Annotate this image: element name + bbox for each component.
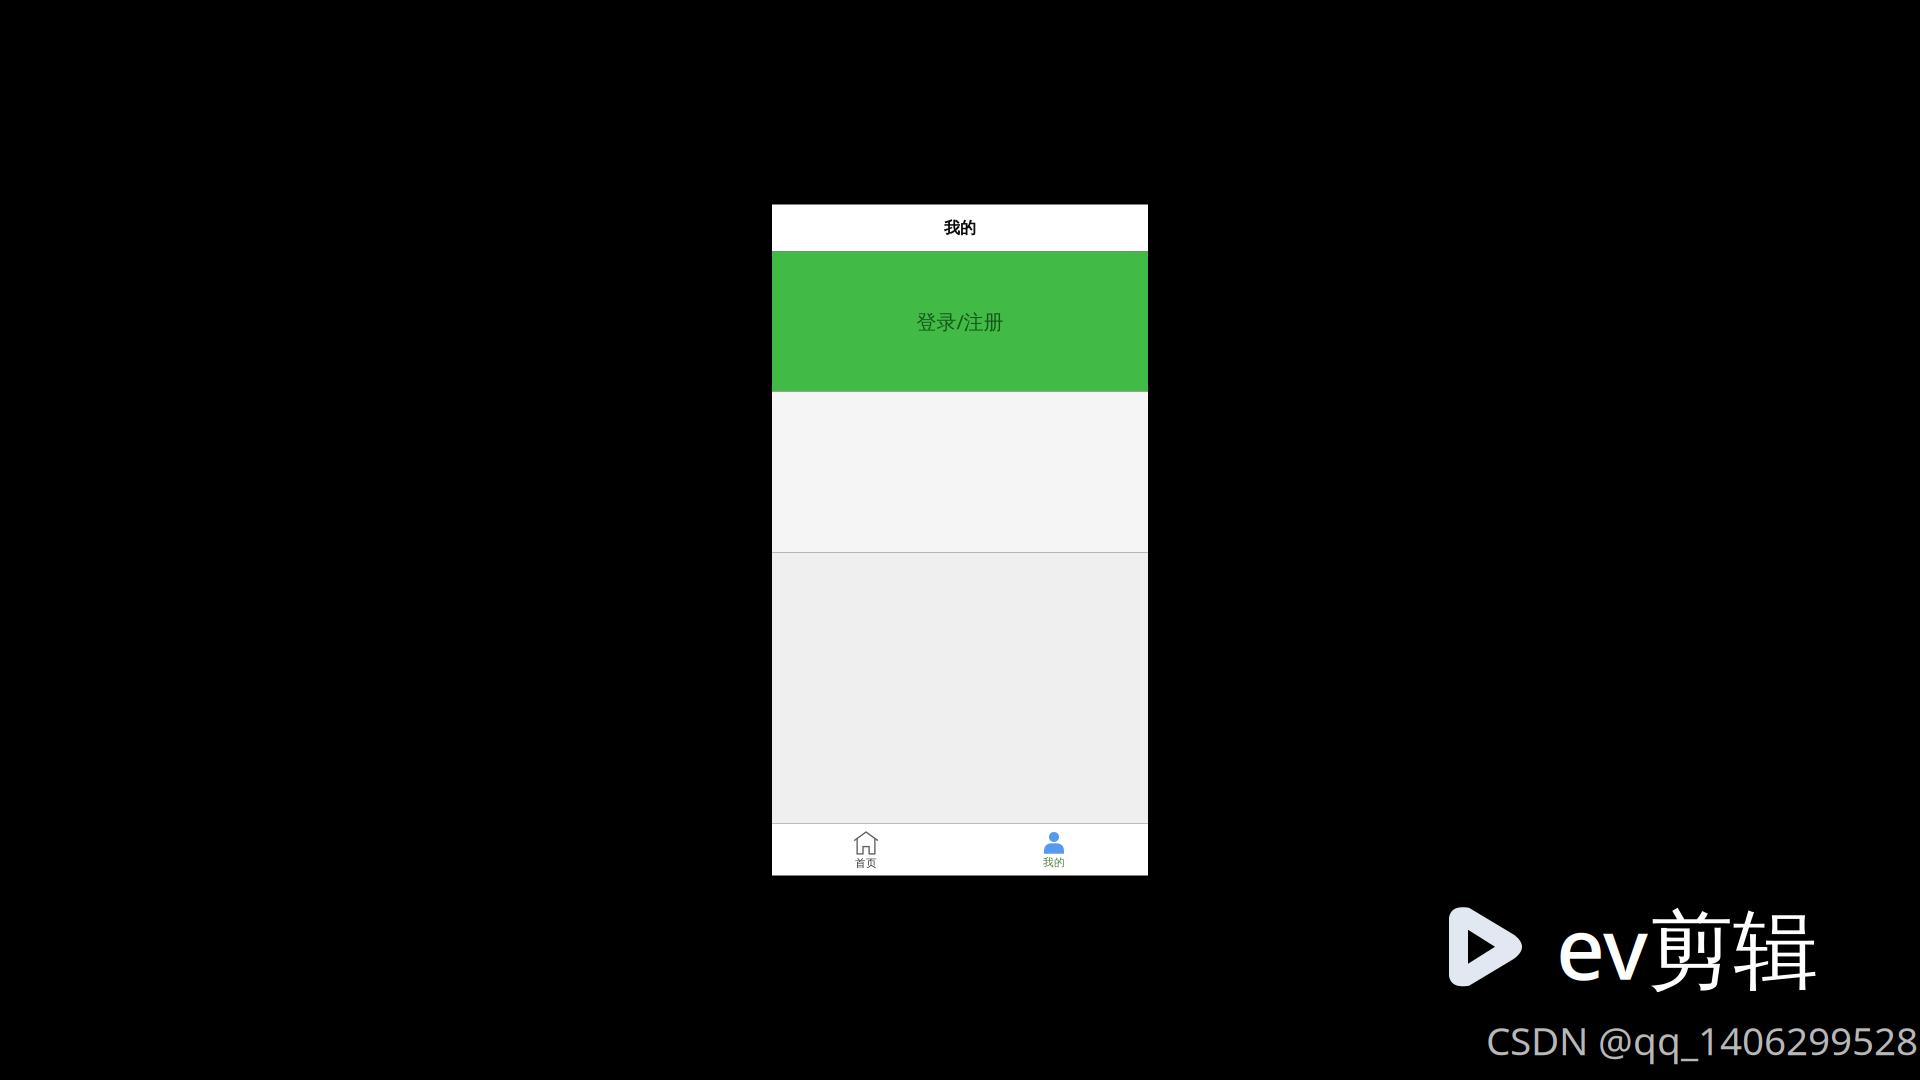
staticText: 登录/注册 — [916, 308, 1003, 335]
staticText: 我的 — [1043, 856, 1065, 869]
staticText: CSDN @qq_1406299528 — [1486, 1015, 1918, 1066]
button[interactable]: 我的 — [960, 823, 1148, 875]
button[interactable]: 首页 — [772, 823, 960, 875]
staticText: ev剪辑 — [1556, 890, 1818, 1004]
staticText: 首页 — [855, 857, 877, 870]
button[interactable]: 登录/注册 — [772, 251, 1148, 391]
staticText: 我的 — [944, 218, 976, 238]
